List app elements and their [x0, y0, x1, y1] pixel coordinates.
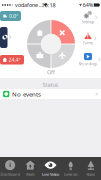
button[interactable]: 24.4°	[0, 0, 24, 9]
staticText: 64%	[83, 1, 93, 9]
staticText: Controls	[64, 172, 78, 177]
staticText: Dashboard	[1, 172, 20, 177]
button[interactable]: Dashboard	[0, 157, 20, 180]
button[interactable]: 0.0°	[0, 0, 21, 10]
button[interactable]: Live Video	[40, 157, 61, 180]
staticText: Status	[42, 81, 58, 88]
staticText: 24.4°	[9, 56, 21, 63]
button[interactable]: No events	[0, 0, 101, 10]
staticText: Rules	[86, 172, 95, 177]
staticText: Vitals	[26, 172, 35, 177]
staticText: No events	[12, 90, 41, 98]
staticText: Events	[82, 40, 93, 45]
staticText: Off	[47, 68, 55, 76]
button[interactable]	[0, 0, 7, 21]
button[interactable]: Rules	[81, 157, 101, 180]
button[interactable]: !	[0, 0, 23, 13]
button[interactable]: Controls	[61, 157, 81, 180]
staticText: Settings	[81, 19, 94, 24]
staticText: Recordings	[78, 61, 97, 66]
button[interactable]: Settings	[0, 0, 23, 13]
staticText: 0.0°	[9, 12, 18, 20]
staticText: !	[87, 33, 89, 40]
button[interactable]: Vitals	[20, 157, 40, 180]
staticText: vodafone IT	[14, 1, 43, 9]
button[interactable]: Recordings	[0, 0, 23, 13]
staticText: 10:18	[41, 1, 55, 9]
staticText: Live Video	[42, 172, 59, 177]
